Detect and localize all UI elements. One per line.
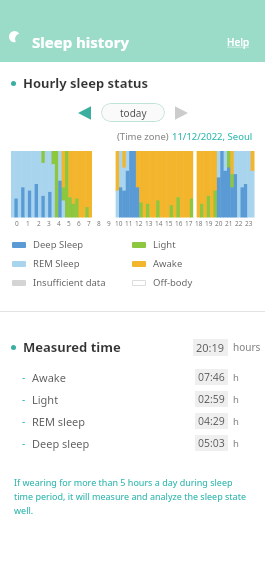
staticText: 15: [165, 219, 173, 228]
staticText: Hourly sleep status: [23, 74, 149, 92]
staticText: 11/12/2022, Seoul: [172, 130, 253, 143]
button[interactable]: Insufficient data: [12, 276, 106, 289]
staticText: Light: [153, 238, 176, 251]
button[interactable]: Measured time: [0, 334, 265, 360]
button[interactable]: today: [101, 103, 165, 122]
staticText: 1: [26, 219, 30, 228]
staticText: -: [22, 414, 26, 428]
staticText: 2: [37, 219, 41, 228]
staticText: 21: [225, 219, 233, 228]
staticText: REM Sleep: [33, 257, 80, 270]
button[interactable]: Light: [132, 238, 176, 251]
button[interactable]: Off-body: [132, 276, 193, 289]
staticText: 4: [57, 219, 61, 228]
staticText: Deep sleep: [32, 436, 90, 451]
staticText: 6: [77, 219, 81, 228]
staticText: 07:46: [198, 370, 225, 384]
staticText: h: [233, 393, 239, 406]
button[interactable]: -: [0, 432, 265, 454]
staticText: Measured time: [23, 338, 121, 356]
staticText: (Time zone): [117, 130, 172, 143]
staticText: 14: [155, 219, 163, 228]
button[interactable]: REM Sleep: [12, 257, 80, 270]
staticText: 20: [215, 219, 223, 228]
staticText: 8: [97, 219, 101, 228]
staticText: 10: [115, 219, 123, 228]
staticText: today: [120, 106, 147, 120]
staticText: 12: [135, 219, 143, 228]
staticText: 7: [87, 219, 91, 228]
staticText: 9: [107, 219, 111, 228]
button[interactable]: Next day: [171, 104, 191, 122]
staticText: -: [22, 370, 26, 384]
staticText: 02:59: [198, 392, 225, 406]
staticText: 5: [67, 219, 71, 228]
staticText: -: [22, 436, 26, 450]
button[interactable]: -: [0, 388, 265, 410]
staticText: 17: [185, 219, 193, 228]
staticText: h: [233, 437, 239, 450]
staticText: Insufficient data: [33, 276, 106, 289]
staticText: 18: [195, 219, 203, 228]
staticText: 23: [245, 219, 253, 228]
staticText: Light: [32, 392, 59, 407]
staticText: 22: [235, 219, 243, 228]
button[interactable]: Awake: [132, 257, 183, 270]
staticText: Awake: [32, 370, 66, 385]
staticText: hours: [233, 340, 261, 354]
button[interactable]: -: [0, 410, 265, 432]
staticText: REM sleep: [32, 414, 86, 429]
button[interactable]: Previous day: [75, 104, 95, 122]
staticText: Sleep history: [32, 32, 129, 52]
staticText: 3: [47, 219, 51, 228]
staticText: 04:29: [198, 414, 225, 428]
staticText: 11: [125, 219, 133, 228]
staticText: 20:19: [196, 340, 225, 355]
button[interactable]: Help: [224, 32, 253, 52]
staticText: h: [233, 415, 239, 428]
staticText: 19: [205, 219, 213, 228]
other: Sleep: [12, 35, 26, 49]
button[interactable]: Deep Sleep: [12, 238, 84, 251]
staticText: Deep Sleep: [33, 238, 84, 251]
staticText: Awake: [153, 257, 183, 270]
staticText: h: [233, 371, 239, 384]
staticText: 05:03: [198, 436, 225, 450]
staticText: 16: [175, 219, 183, 228]
staticText: If wearing for more than 5 hours a day d…: [14, 476, 251, 517]
button[interactable]: -: [0, 366, 265, 388]
staticText: 0: [15, 219, 19, 228]
staticText: -: [22, 392, 26, 406]
staticText: Off-body: [153, 276, 193, 289]
staticText: Help: [227, 35, 250, 49]
staticText: 13: [145, 219, 153, 228]
